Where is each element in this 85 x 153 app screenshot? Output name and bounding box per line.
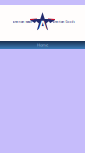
staticText: Home [37, 42, 48, 48]
button[interactable]: Home [0, 41, 85, 49]
staticText: American Waste [12, 20, 32, 24]
staticText: American Goods [52, 20, 74, 24]
staticText: A [38, 17, 46, 33]
